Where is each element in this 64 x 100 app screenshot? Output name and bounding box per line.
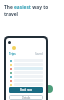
staticText: Book now xyxy=(20,88,33,92)
staticText: Trips xyxy=(9,52,16,56)
button[interactable]: Details xyxy=(9,95,43,100)
button[interactable]: Book now xyxy=(9,87,43,93)
staticText: Saved xyxy=(35,52,43,56)
staticText: The easiest way to travel xyxy=(4,4,61,18)
staticText: Details xyxy=(22,96,31,100)
